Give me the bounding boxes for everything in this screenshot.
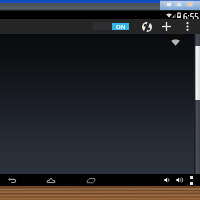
- staticText: ON: [116, 23, 126, 30]
- button[interactable]: Home: [42, 174, 59, 186]
- button[interactable]: Toggle: [93, 22, 129, 30]
- button[interactable]: Volume up: [173, 174, 185, 186]
- button[interactable]: Zoom: [190, 176, 193, 185]
- button[interactable]: Window button: [174, 1, 183, 7]
- button[interactable]: Sync: [140, 20, 153, 33]
- button[interactable]: Volume down: [161, 174, 173, 186]
- staticText: 6:55: [183, 11, 199, 19]
- button[interactable]: More options: [182, 20, 193, 33]
- button[interactable]: Window button: [185, 1, 194, 7]
- button[interactable]: Window button: [164, 1, 173, 7]
- button[interactable]: Recent apps: [82, 174, 99, 186]
- button[interactable]: Add: [160, 20, 173, 33]
- button[interactable]: Back: [3, 174, 20, 186]
